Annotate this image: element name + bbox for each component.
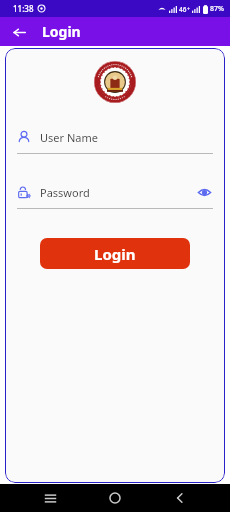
staticText: Login — [42, 22, 81, 41]
button[interactable]: Back — [8, 21, 30, 43]
staticText: User Name — [40, 130, 98, 145]
button[interactable]: Home — [100, 484, 130, 512]
button[interactable]: User Name — [17, 126, 213, 148]
button[interactable]: Password — [17, 181, 213, 203]
staticText: Login — [94, 244, 136, 264]
staticText: Password — [40, 185, 90, 200]
button[interactable]: Login — [40, 238, 190, 269]
staticText: + — [187, 6, 190, 13]
staticText: 87% — [210, 4, 224, 14]
staticText: 11:38 — [13, 3, 34, 14]
button[interactable]: Back — [165, 484, 195, 512]
button[interactable]: Show password — [195, 183, 213, 201]
button[interactable]: Recent apps — [35, 484, 65, 512]
staticText: 46 — [179, 5, 187, 14]
